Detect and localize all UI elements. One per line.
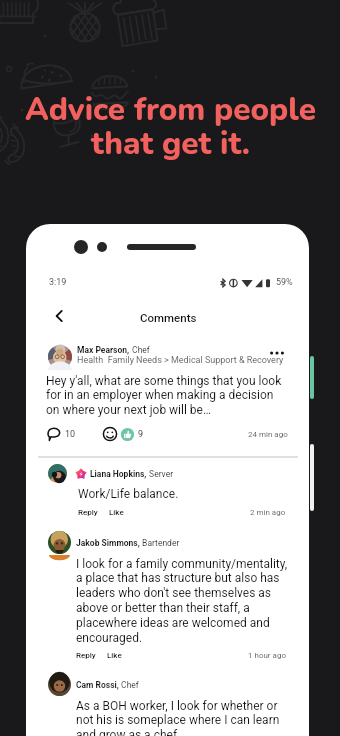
staticText: As a BOH worker, I look for whether or n… [76,699,289,736]
staticText: 2 min ago [250,508,286,517]
button[interactable]: Reply [78,508,98,517]
staticText: Advice from people that get it. [25,88,316,165]
staticText: I look for a family community/mentality,… [76,557,289,645]
staticText: Chef [119,680,139,690]
staticText: Hey y'all, what are some things that you… [46,374,286,417]
button[interactable]: Like [107,651,122,660]
staticText: Chef [130,345,150,355]
button[interactable]: 10 [45,424,77,444]
staticText: 10 [65,429,76,440]
staticText: 9 [138,429,144,440]
staticText: Health Family Needs > Medical Support & … [77,355,284,366]
staticText: 24 min ago [248,430,288,439]
staticText: 59% [276,277,293,288]
staticText: Server [147,469,174,479]
button[interactable]: Back [46,303,72,329]
staticText: Liana Hopkins, [90,469,147,479]
button[interactable]: Reply [76,651,96,660]
button[interactable]: 9 [102,424,144,444]
staticText: Max Pearson, [77,345,130,355]
button[interactable]: More options [268,344,286,362]
staticText: Jakob Simmons, [76,538,140,548]
staticText: Work/Life balance. [78,487,179,501]
button[interactable]: Like [109,508,124,517]
staticText: Comments [140,311,197,324]
staticText: Cam Rossi, [76,680,119,690]
staticText: 1 hour ago [248,651,286,660]
staticText: 3:19 [49,277,67,288]
staticText: Bartender [140,538,180,548]
